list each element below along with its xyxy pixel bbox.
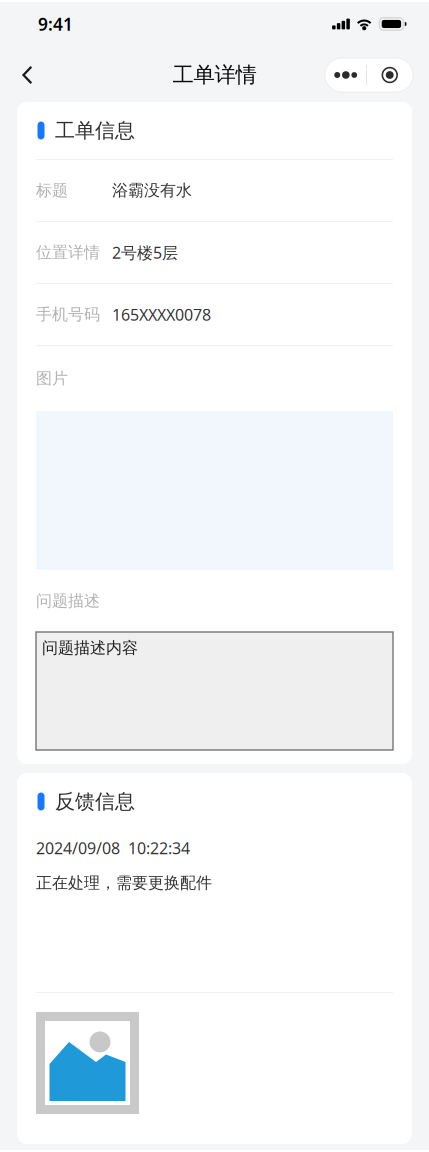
staticText: 2024/09/08 10:22:34: [36, 837, 190, 859]
staticText: 工单详情: [172, 62, 256, 88]
staticText: 2号楼5层: [112, 242, 178, 263]
staticText: 正在处理，需要更换配件: [36, 873, 212, 893]
staticText: 反馈信息: [55, 789, 135, 814]
staticText: 问题描述: [36, 591, 100, 611]
staticText: 工单信息: [55, 118, 135, 143]
staticText: 手机号码: [36, 305, 100, 324]
button[interactable]: Close: [367, 58, 412, 92]
staticText: 165XXXX0078: [112, 304, 211, 325]
button[interactable]: More: [325, 58, 366, 92]
staticText: 问题描述内容: [42, 638, 138, 658]
staticText: 图片: [36, 369, 68, 388]
staticText: 标题: [36, 181, 68, 200]
button[interactable]: Back: [5, 53, 49, 97]
staticText: 浴霸没有水: [112, 181, 192, 200]
staticText: 位置详情: [36, 243, 100, 262]
staticText: 9:41: [38, 12, 73, 35]
